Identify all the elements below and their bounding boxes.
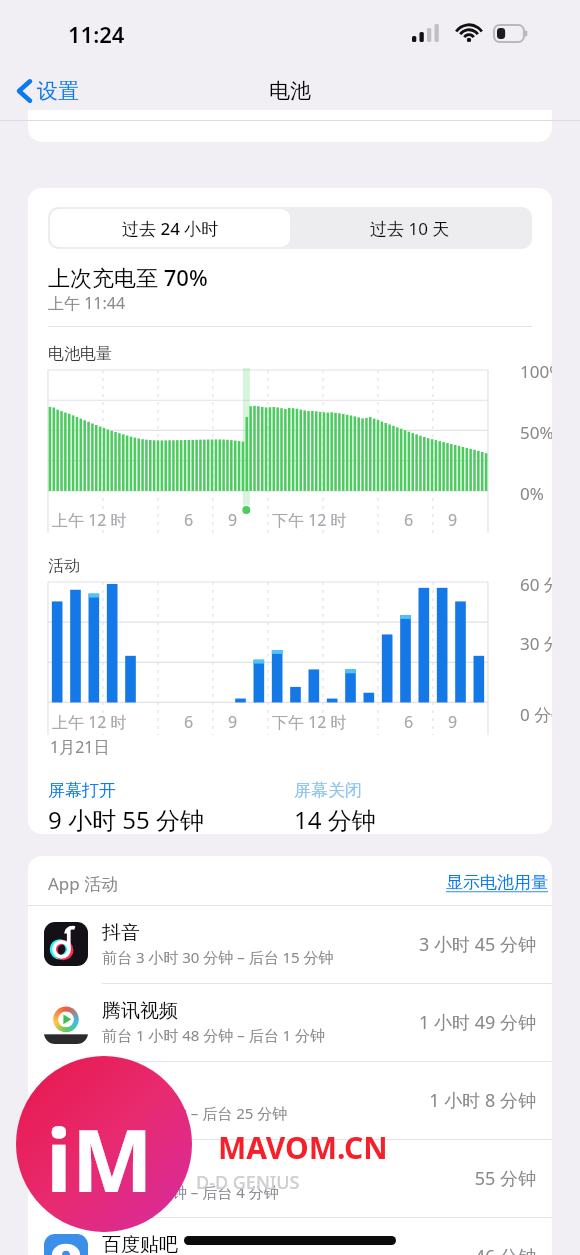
staticText: 上午 12 时 xyxy=(52,509,180,531)
staticText: 上次充电至 70% xyxy=(48,262,208,292)
staticText: 9 xyxy=(228,711,268,733)
button[interactable]: 过去 24 小时 xyxy=(50,209,290,247)
staticText: 腾讯视频 xyxy=(102,999,178,1023)
staticText: 前台 43 分钟 – 后台 25 分钟 xyxy=(102,1103,288,1123)
staticText: 前台 51 分钟 – 后台 4 分钟 xyxy=(102,1182,279,1202)
staticText: 前台 3 小时 30 分钟 – 后台 15 分钟 xyxy=(102,947,334,967)
staticText: 上午 12 时 xyxy=(52,711,180,733)
staticText: 下午 12 时 xyxy=(272,711,400,733)
staticText: 100% xyxy=(520,360,552,383)
staticText: 1月21日 xyxy=(50,736,110,758)
staticText: 9 xyxy=(448,509,488,531)
button[interactable]: 微信 xyxy=(28,1061,552,1139)
staticText: 6 xyxy=(404,509,444,531)
button[interactable]: 过去 10 天 xyxy=(290,209,530,247)
button[interactable]: 屏幕关闭 xyxy=(294,780,376,834)
button[interactable]: 腾讯视频 xyxy=(28,983,552,1061)
staticText: 电池电量 xyxy=(48,344,112,364)
staticText: 屏幕关闭 xyxy=(294,780,362,801)
staticText: 抖音 xyxy=(102,921,140,945)
staticText: 0 分钟 xyxy=(520,703,552,726)
staticText: 上午 11:44 xyxy=(48,292,126,314)
staticText: 14 分钟 xyxy=(294,803,376,834)
staticText: App 活动 xyxy=(48,872,119,895)
staticText: 30 分钟 xyxy=(520,632,552,655)
staticText: 9 xyxy=(228,509,268,531)
button[interactable]: 抖音 xyxy=(28,905,552,983)
staticText: iM xyxy=(46,1100,153,1217)
staticText: 3 小时 45 分钟 xyxy=(416,932,536,957)
staticText: 9 小时 55 分钟 xyxy=(48,803,204,834)
staticText: 过去 10 天 xyxy=(370,217,450,240)
button[interactable]: QQ xyxy=(28,1139,552,1217)
staticText: 6 xyxy=(184,509,224,531)
staticText: 1 小时 8 分钟 xyxy=(416,1088,536,1113)
button[interactable]: 显示电池用量 xyxy=(440,866,552,899)
staticText: 设置 xyxy=(37,78,79,104)
staticText: 过去 24 小时 xyxy=(122,217,219,240)
staticText: 9 xyxy=(448,711,488,733)
staticText: 显示电池用量 xyxy=(446,872,548,893)
staticText: 屏幕打开 xyxy=(48,780,116,801)
button[interactable]: 设置 xyxy=(14,72,83,110)
staticText: 6 xyxy=(404,711,444,733)
staticText: 前台 1 小时 48 分钟 – 后台 1 分钟 xyxy=(102,1025,326,1045)
staticText: D-D GENIUS xyxy=(196,1170,300,1195)
button[interactable]: 百度贴吧 xyxy=(28,1217,552,1255)
staticText: 下午 12 时 xyxy=(272,509,400,531)
staticText: 活动 xyxy=(48,556,80,576)
staticText: MAVOM.CN xyxy=(218,1127,388,1168)
staticText: 46 分钟 xyxy=(416,1244,536,1255)
staticText: 55 分钟 xyxy=(416,1166,536,1191)
staticText: 1 小时 49 分钟 xyxy=(416,1010,536,1035)
staticText: 50% xyxy=(520,421,552,444)
staticText: 11:24 xyxy=(68,19,125,49)
staticText: 60 分钟 xyxy=(520,573,552,596)
button[interactable]: 屏幕打开 xyxy=(48,780,204,834)
staticText: 电池 xyxy=(269,78,311,104)
staticText: 6 xyxy=(184,711,224,733)
staticText: QQ xyxy=(102,1154,132,1180)
staticText: 百度贴吧 xyxy=(102,1233,178,1255)
staticText: 0% xyxy=(520,482,544,505)
